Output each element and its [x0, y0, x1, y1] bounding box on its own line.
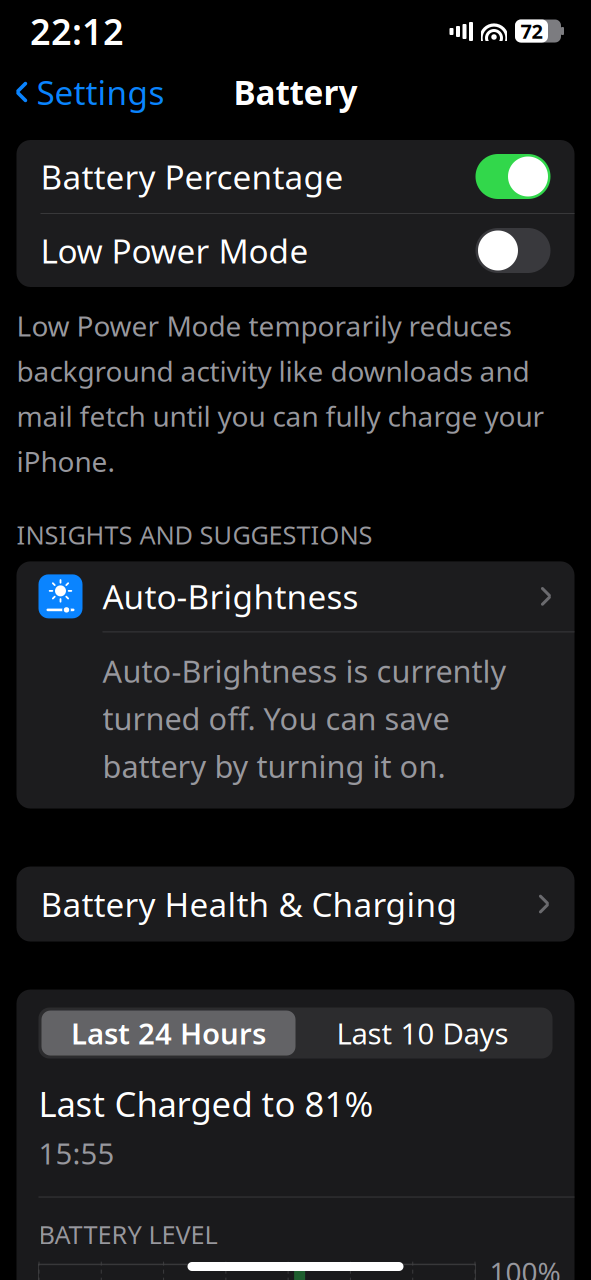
button[interactable]: Low Power Mode — [16, 214, 574, 287]
button[interactable]: Battery Health & Charging — [16, 866, 574, 941]
staticText: Last 24 Hours — [71, 1014, 266, 1053]
button[interactable]: Battery Percentage — [16, 140, 574, 213]
staticText: Auto-Brightness is currently turned off.… — [102, 650, 506, 787]
button[interactable]: Settings — [0, 64, 164, 120]
staticText: Auto-Brightness — [102, 574, 358, 618]
staticText: 72 — [520, 18, 542, 44]
staticText: Battery — [233, 70, 357, 114]
staticText: 15:55 — [38, 1134, 114, 1173]
button[interactable]: Auto-Brightness — [16, 561, 574, 631]
staticText: 22:12 — [30, 7, 124, 55]
staticText: Low Power Mode temporarily reduces backg… — [16, 307, 544, 480]
staticText: Last Charged to 81% — [38, 1080, 373, 1126]
staticText: Settings — [36, 70, 164, 114]
button[interactable]: Last 24 Hours — [41, 1010, 295, 1055]
staticText: Last 10 Days — [336, 1014, 508, 1053]
staticText: Battery Health & Charging — [40, 882, 457, 926]
staticText: INSIGHTS AND SUGGESTIONS — [16, 518, 372, 551]
staticText: Battery Percentage — [40, 154, 343, 199]
staticText: 100% — [489, 1253, 560, 1280]
button[interactable]: Last 10 Days — [295, 1010, 549, 1055]
staticText: Low Power Mode — [40, 228, 308, 273]
staticText: BATTERY LEVEL — [38, 1217, 217, 1251]
